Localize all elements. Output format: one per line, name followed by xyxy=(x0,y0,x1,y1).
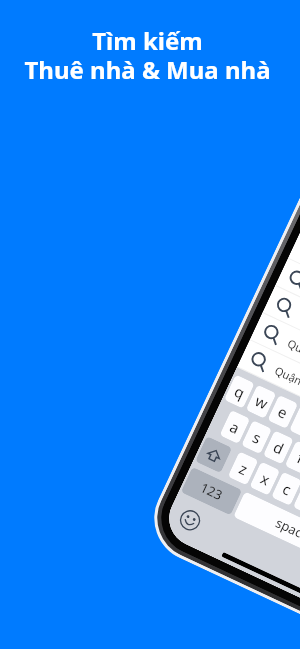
button[interactable]: e xyxy=(267,395,298,429)
staticText: w xyxy=(252,390,271,413)
staticText: Quận Gò Vấp xyxy=(298,308,300,351)
button[interactable]: space xyxy=(233,491,300,567)
staticText: e xyxy=(274,401,291,423)
button[interactable]: x xyxy=(249,461,280,496)
button[interactable]: d xyxy=(263,430,294,464)
button[interactable]: Quận Gò Vấp xyxy=(270,289,300,413)
staticText: 123 xyxy=(197,478,226,504)
staticText: s xyxy=(249,427,265,448)
button[interactable]: c xyxy=(271,472,300,506)
button[interactable]: v xyxy=(293,482,300,516)
staticText: Thuê nhà & Mua nhà xyxy=(24,53,271,86)
button[interactable]: r xyxy=(289,405,300,439)
staticText: space xyxy=(272,513,300,545)
button[interactable]: Quận Bình Thạnh xyxy=(295,235,300,358)
button[interactable]: Quận 3, Hồ Chí Minh xyxy=(257,316,300,440)
button[interactable]: s xyxy=(241,420,272,454)
staticText: x xyxy=(257,468,273,489)
button[interactable]: Quận 9, Hồ Chí Minh xyxy=(282,262,300,385)
staticText: c xyxy=(279,478,295,500)
staticText: Tìm kiếm xyxy=(92,24,203,57)
staticText: Quận 2, Hồ Chí Minh xyxy=(272,363,300,422)
staticText: f xyxy=(294,447,300,468)
button[interactable]: z xyxy=(228,451,258,486)
button[interactable]: f xyxy=(285,440,300,475)
button[interactable]: Emoji xyxy=(175,505,204,534)
staticText: q xyxy=(231,381,248,403)
button[interactable]: Shift xyxy=(195,436,232,473)
button[interactable]: 123 xyxy=(181,467,242,515)
button[interactable]: Quận 2, Hồ Chí Minh xyxy=(244,343,300,467)
staticText: Quận 3, Hồ Chí Minh xyxy=(285,335,300,394)
button[interactable]: q xyxy=(224,374,255,409)
button[interactable]: a xyxy=(219,410,250,444)
staticText: d xyxy=(270,436,287,459)
button[interactable]: w xyxy=(246,385,276,419)
staticText: r xyxy=(297,411,300,433)
staticText: z xyxy=(236,458,251,479)
staticText: a xyxy=(226,416,243,438)
